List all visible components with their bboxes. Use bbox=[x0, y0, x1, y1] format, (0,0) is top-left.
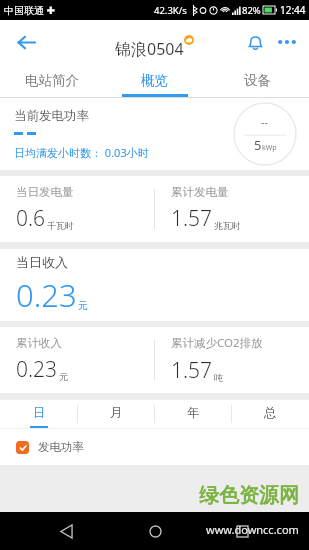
staticText: 千瓦时 bbox=[47, 220, 74, 231]
staticText: 设备 bbox=[244, 72, 271, 89]
staticText: 吨 bbox=[214, 372, 223, 383]
button[interactable]: 累计减少CO2排放 bbox=[155, 327, 309, 393]
staticText: 累计收入 bbox=[16, 336, 62, 350]
staticText: 累计减少CO2排放 bbox=[171, 335, 263, 351]
staticText: 发电功率 bbox=[38, 440, 84, 454]
staticText: -- bbox=[261, 114, 269, 129]
button[interactable]: 电站简介 bbox=[0, 64, 103, 97]
staticText: 当前发电功率 bbox=[14, 108, 89, 124]
button[interactable]: 当日发电量 bbox=[0, 176, 154, 242]
staticText: 年 bbox=[187, 405, 200, 421]
button[interactable]: Back bbox=[8, 24, 44, 60]
staticText: 日 bbox=[33, 405, 46, 421]
button[interactable]: Home bbox=[135, 512, 175, 550]
staticText: 累计发电量 bbox=[171, 185, 229, 199]
button[interactable]: 总 bbox=[232, 400, 309, 428]
button[interactable]: Recent apps bbox=[222, 512, 262, 550]
staticText: 12:44 bbox=[280, 3, 306, 17]
staticText: kWp bbox=[262, 143, 277, 153]
staticText: 电站简介 bbox=[25, 72, 79, 89]
button[interactable]: 设备 bbox=[206, 64, 309, 97]
staticText: 1.57 bbox=[171, 356, 213, 385]
staticText: 锦浪0504 bbox=[115, 38, 184, 60]
staticText: 0.23 bbox=[16, 355, 58, 384]
button[interactable]: 概览 bbox=[103, 64, 206, 97]
staticText: 元 bbox=[59, 371, 68, 382]
staticText: 兆瓦时 bbox=[214, 220, 241, 231]
button[interactable]: Back bbox=[47, 512, 87, 550]
staticText: 概览 bbox=[141, 72, 168, 89]
staticText: 当日发电量 bbox=[16, 185, 74, 199]
button[interactable]: 当日收入 bbox=[0, 249, 309, 321]
staticText: 总 bbox=[264, 405, 277, 421]
staticText: 42.3K/s bbox=[154, 4, 187, 17]
staticText: 0.6 bbox=[16, 204, 46, 233]
staticText: 82% bbox=[242, 4, 261, 17]
button[interactable]: 累计收入 bbox=[0, 327, 154, 393]
button[interactable]: More options bbox=[271, 26, 303, 58]
button[interactable]: 发电功率 checkbox bbox=[16, 441, 29, 454]
staticText: 1.57 bbox=[171, 204, 213, 233]
staticText: 5 bbox=[254, 136, 262, 154]
button[interactable]: 月 bbox=[78, 400, 155, 428]
button[interactable]: Notifications bbox=[239, 26, 271, 58]
staticText: 0.23 bbox=[16, 274, 77, 316]
staticText: 日均满发小时数： 0.03小时 bbox=[14, 145, 149, 160]
button[interactable]: 日 bbox=[0, 400, 78, 428]
staticText: 中国联通 ✚ bbox=[4, 3, 55, 17]
button[interactable]: 年 bbox=[155, 400, 232, 428]
staticText: 元 bbox=[78, 299, 88, 312]
staticText: www.downcc.com bbox=[206, 522, 299, 537]
staticText: 绿色资源网 bbox=[199, 483, 299, 508]
staticText: 当日收入 bbox=[16, 254, 68, 270]
staticText: 月 bbox=[110, 405, 123, 421]
button[interactable]: 累计发电量 bbox=[155, 176, 309, 242]
